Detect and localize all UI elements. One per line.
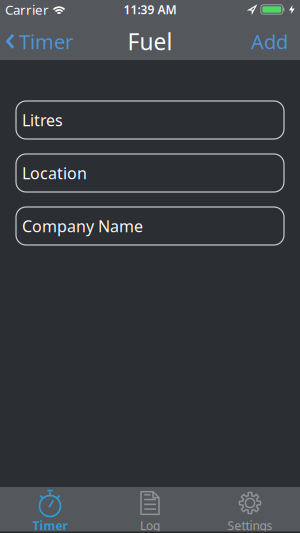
button[interactable]: Location <box>16 154 284 192</box>
button[interactable]: Timer <box>0 487 100 533</box>
button[interactable]: Litres <box>16 101 284 139</box>
button[interactable]: Settings <box>200 487 300 533</box>
staticText: Litres <box>22 109 63 131</box>
staticText: Company Name <box>22 215 143 237</box>
staticText: Location <box>22 162 87 184</box>
staticText: 11:39 AM <box>123 1 176 17</box>
staticText: Timer <box>19 28 73 55</box>
staticText: Add <box>251 28 288 55</box>
staticText: Fuel <box>127 26 172 56</box>
staticText: Timer <box>32 517 67 533</box>
staticText: Carrier <box>5 1 49 18</box>
button[interactable]: Log <box>100 487 200 533</box>
staticText: Log <box>140 517 160 533</box>
button[interactable]: Timer <box>0 28 73 55</box>
button[interactable]: Company Name <box>16 207 284 245</box>
button[interactable]: Add <box>251 28 300 55</box>
staticText: Settings <box>227 517 272 533</box>
